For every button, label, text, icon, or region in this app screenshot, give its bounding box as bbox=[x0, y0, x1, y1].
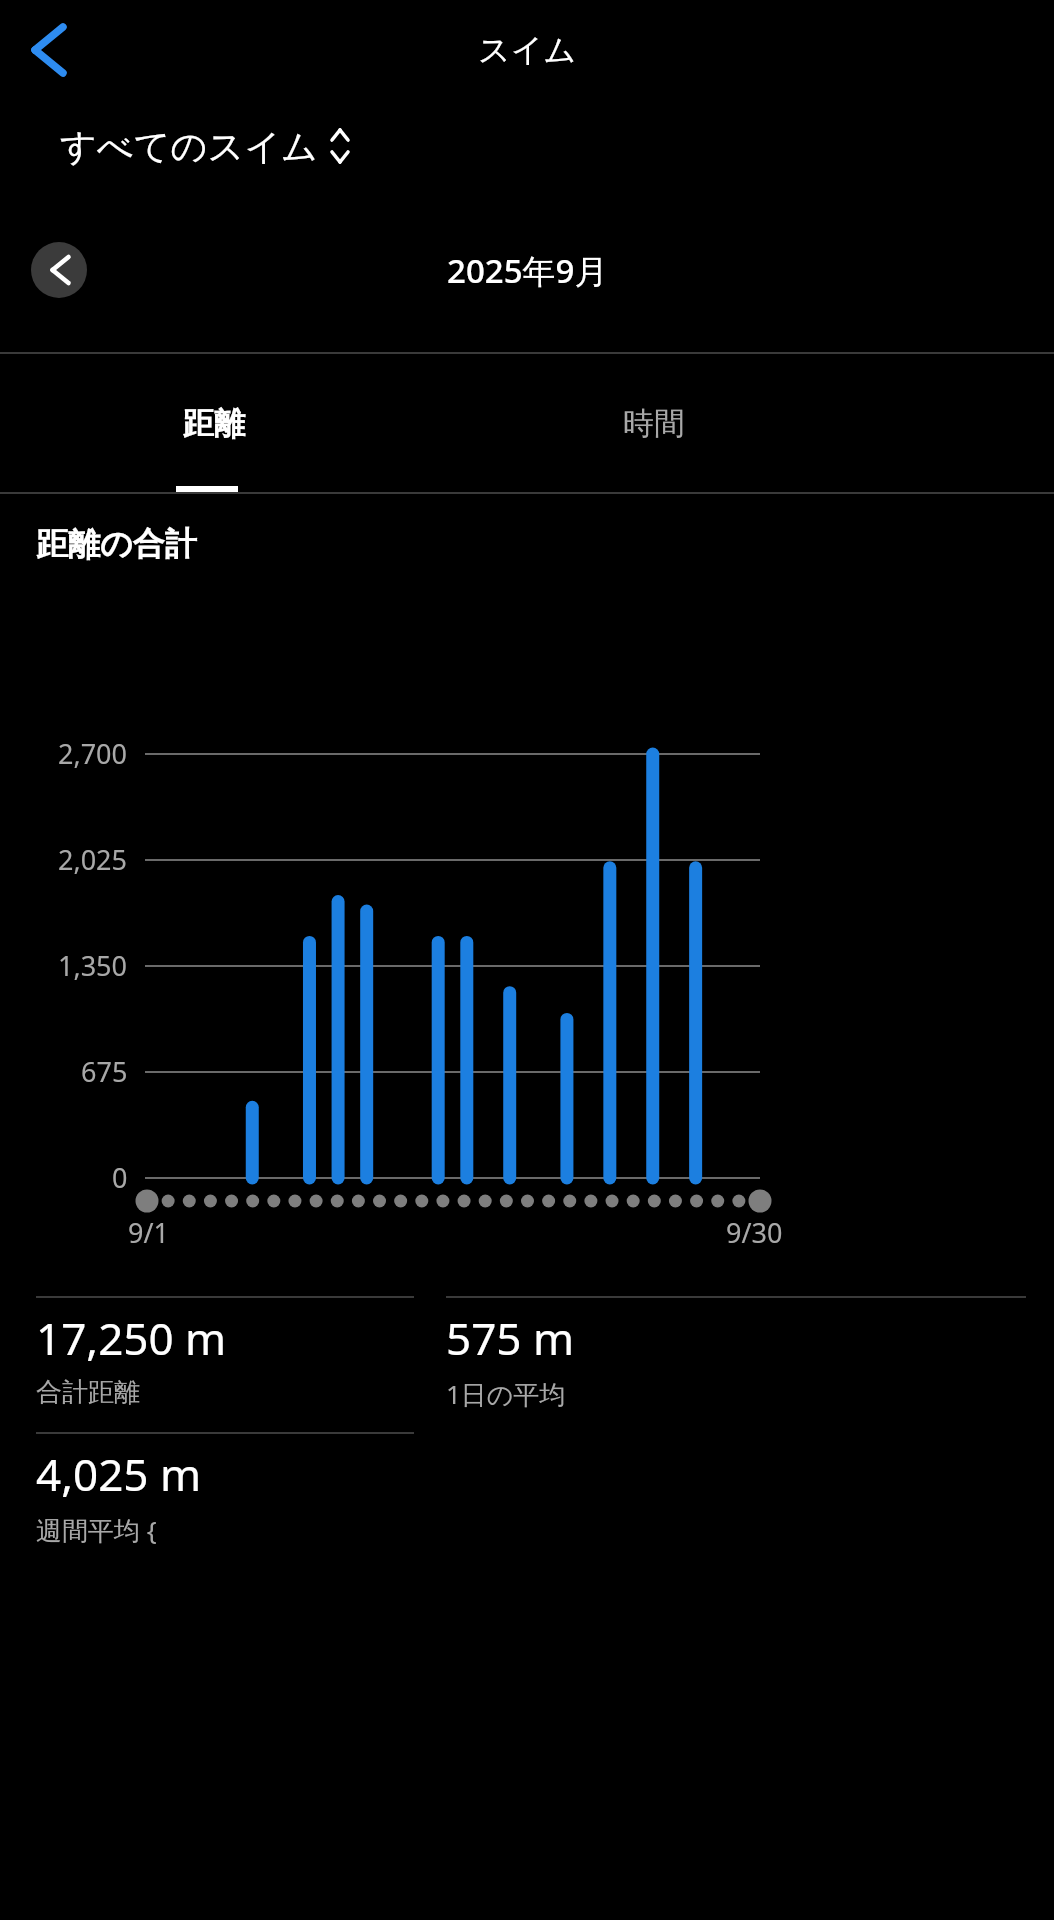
button[interactable]: 17,250 m bbox=[36, 1308, 227, 1409]
staticText: 4,025 m bbox=[36, 1444, 202, 1504]
staticText: 675 bbox=[81, 1053, 128, 1090]
button[interactable]: 時間 bbox=[440, 354, 867, 492]
staticText: すべてのスイム bbox=[60, 124, 318, 169]
staticText: 距離 bbox=[183, 404, 245, 443]
staticText: 週間平均 { bbox=[36, 1512, 157, 1548]
button[interactable]: 4,025 m bbox=[36, 1444, 202, 1548]
staticText: 2025年9月 bbox=[447, 248, 608, 293]
button[interactable]: Previous month bbox=[31, 242, 87, 298]
staticText: 2,700 bbox=[58, 735, 128, 772]
staticText: 距離の合計 bbox=[36, 524, 197, 564]
button[interactable]: すべてのスイム bbox=[60, 112, 352, 180]
staticText: 1,350 bbox=[58, 947, 128, 984]
staticText: 時間 bbox=[623, 404, 685, 443]
button[interactable]: 575 m bbox=[446, 1308, 575, 1412]
staticText: 2,025 bbox=[58, 841, 128, 878]
staticText: 1日の平均 bbox=[446, 1376, 566, 1412]
staticText: 0 bbox=[112, 1159, 128, 1196]
button[interactable]: 距離 bbox=[0, 354, 427, 492]
staticText: 575 m bbox=[446, 1308, 575, 1368]
staticText: スイム bbox=[478, 30, 577, 70]
staticText: 17,250 m bbox=[36, 1308, 227, 1368]
staticText: 9/1 bbox=[128, 1214, 169, 1251]
staticText: 9/30 bbox=[726, 1214, 783, 1251]
staticText: 合計距離 bbox=[36, 1376, 140, 1409]
button[interactable]: Back bbox=[12, 13, 86, 87]
